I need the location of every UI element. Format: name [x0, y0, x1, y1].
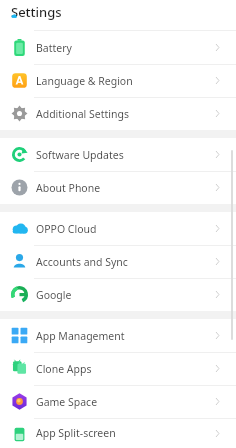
staticText: OPPO Cloud [36, 222, 97, 236]
staticText: Clone Apps [36, 362, 92, 376]
button[interactable]: Clone Apps [0, 352, 236, 385]
staticText: App Split-screen [36, 426, 116, 440]
staticText: Language & Region [36, 74, 133, 88]
button[interactable]: Game Space [0, 385, 236, 418]
button[interactable]: Software Updates [0, 138, 236, 171]
staticText: Additional Settings [36, 107, 129, 121]
button[interactable]: OPPO Cloud [0, 212, 236, 245]
staticText: Software Updates [36, 148, 124, 162]
staticText: Accounts and Sync [36, 255, 128, 269]
button[interactable]: Accounts and Sync [0, 245, 236, 278]
button[interactable]: App Split-screen [0, 418, 236, 448]
staticText: About Phone [36, 181, 101, 195]
button[interactable]: Language & Region [0, 64, 236, 97]
button[interactable]: Google [0, 278, 236, 311]
button[interactable]: Battery [0, 31, 236, 64]
staticText: Google [36, 288, 72, 302]
button[interactable]: About Phone [0, 171, 236, 204]
button[interactable]: Additional Settings [0, 97, 236, 130]
staticText: Game Space [36, 395, 98, 409]
button[interactable]: App Management [0, 319, 236, 352]
staticText: App Management [36, 329, 125, 343]
staticText: Settings [11, 3, 62, 21]
button[interactable] [0, 25, 236, 31]
staticText: Battery [36, 41, 72, 55]
